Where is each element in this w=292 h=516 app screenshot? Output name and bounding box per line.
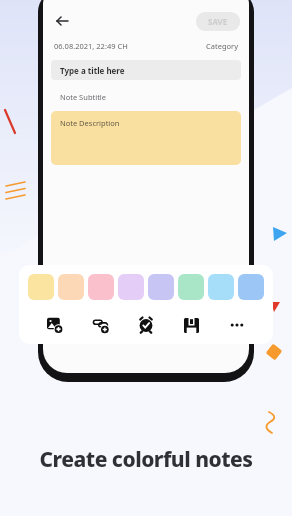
button[interactable]: Select colour (178, 274, 204, 300)
button[interactable]: Select colour (118, 274, 144, 300)
button[interactable]: More options (222, 310, 252, 340)
button[interactable]: Type a title here (51, 60, 241, 80)
staticText: Category (206, 41, 238, 51)
button[interactable]: Select colour (28, 274, 54, 300)
button[interactable]: Add link (86, 310, 116, 340)
button[interactable]: Select colour (238, 274, 264, 300)
button[interactable]: Select colour (208, 274, 234, 300)
button[interactable]: Set reminder (131, 310, 161, 340)
staticText: Note Description (60, 118, 120, 128)
button[interactable]: Note Description (51, 111, 241, 165)
staticText: Note Subtitle (60, 92, 107, 102)
staticText: 06.08.2021, 22:49 CH (54, 41, 128, 51)
button[interactable]: SAVE (196, 12, 240, 31)
button[interactable]: Select colour (148, 274, 174, 300)
staticText: SAVE (208, 16, 228, 27)
button[interactable]: Add image (40, 310, 70, 340)
button[interactable]: Save note (176, 310, 206, 340)
button[interactable]: Category (206, 41, 238, 51)
staticText: Create colorful notes (0, 445, 292, 474)
button[interactable]: Select colour (88, 274, 114, 300)
button[interactable]: Note Subtitle (51, 88, 241, 105)
staticText: Type a title here (60, 65, 125, 76)
button[interactable]: Select colour (58, 274, 84, 300)
button[interactable]: Back (52, 11, 72, 31)
